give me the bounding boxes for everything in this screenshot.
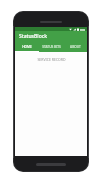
staticText: STATUS BITS <box>42 45 61 49</box>
button[interactable]: STATUS BITS <box>39 42 63 52</box>
button[interactable]: HOME <box>15 42 39 52</box>
other: Status icons <box>69 28 85 31</box>
staticText: ABOUT <box>70 45 81 49</box>
staticText: SERVICE RECORD <box>37 57 66 62</box>
staticText: StatusBlock <box>19 33 47 40</box>
button[interactable]: ABOUT <box>63 42 87 52</box>
staticText: HOME <box>22 45 32 49</box>
